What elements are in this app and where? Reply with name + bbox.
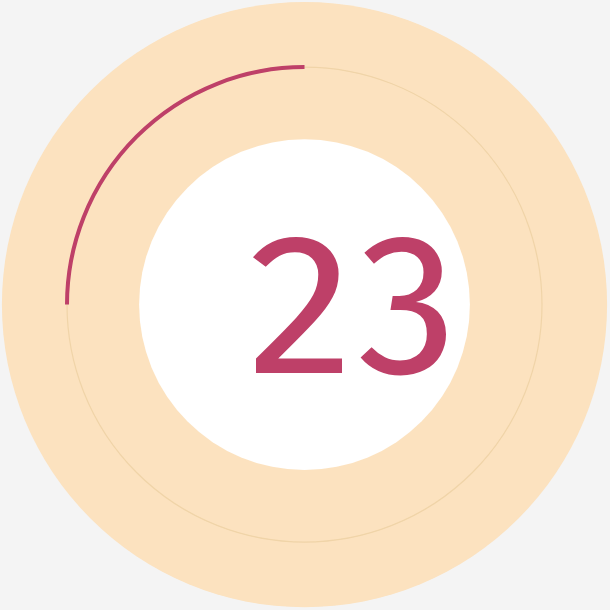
button[interactable]: Timer, 23 remaining [0,0,610,610]
